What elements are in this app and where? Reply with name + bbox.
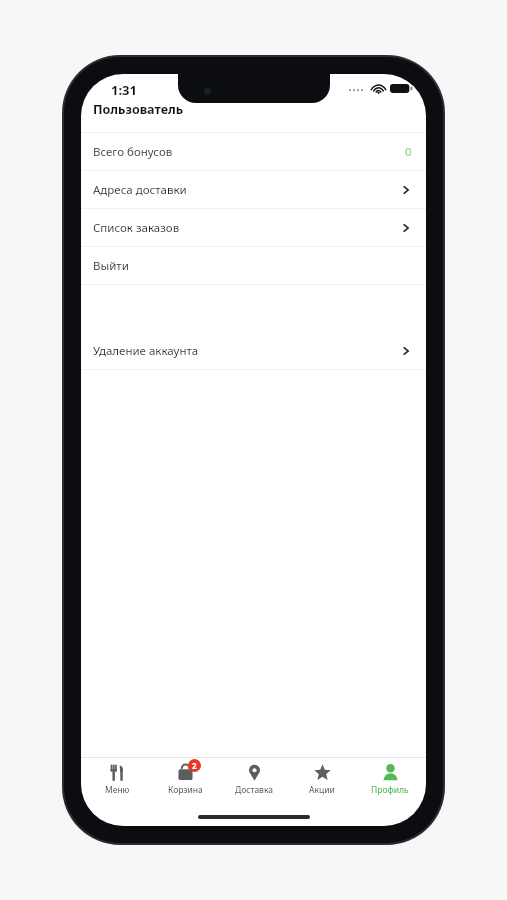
button[interactable]: Корзина: [153, 763, 217, 796]
staticText: Профиль: [371, 784, 409, 796]
staticText: Всего бонусов: [93, 144, 173, 160]
button[interactable]: Профиль: [358, 763, 422, 796]
staticText: Выйти: [93, 258, 129, 274]
staticText: Адреса доставки: [93, 182, 187, 198]
staticText: Акции: [309, 784, 335, 796]
button[interactable]: Меню: [85, 763, 149, 796]
staticText: Пользователь: [93, 101, 184, 118]
staticText: Доставка: [235, 784, 273, 796]
other: Профиль: [381, 763, 400, 782]
staticText: 1:31: [111, 81, 137, 99]
button[interactable]: Доставка: [222, 763, 286, 796]
button[interactable]: Выйти: [81, 247, 426, 284]
button[interactable]: Удаление аккаунта: [81, 332, 426, 369]
other: Корзина: [176, 763, 195, 782]
staticText: Список заказов: [93, 220, 180, 236]
other: Доставка: [245, 763, 264, 782]
other: Акции: [313, 763, 332, 782]
button[interactable]: Акции: [290, 763, 354, 796]
other: Меню: [108, 763, 127, 782]
button[interactable]: Всего бонусов: [81, 133, 426, 170]
staticText: 0: [405, 144, 412, 160]
staticText: 2: [192, 760, 197, 771]
button[interactable]: Адреса доставки: [81, 171, 426, 208]
staticText: Меню: [105, 784, 130, 796]
button[interactable]: Список заказов: [81, 209, 426, 246]
staticText: Удаление аккаунта: [93, 343, 199, 359]
staticText: Корзина: [168, 784, 203, 796]
